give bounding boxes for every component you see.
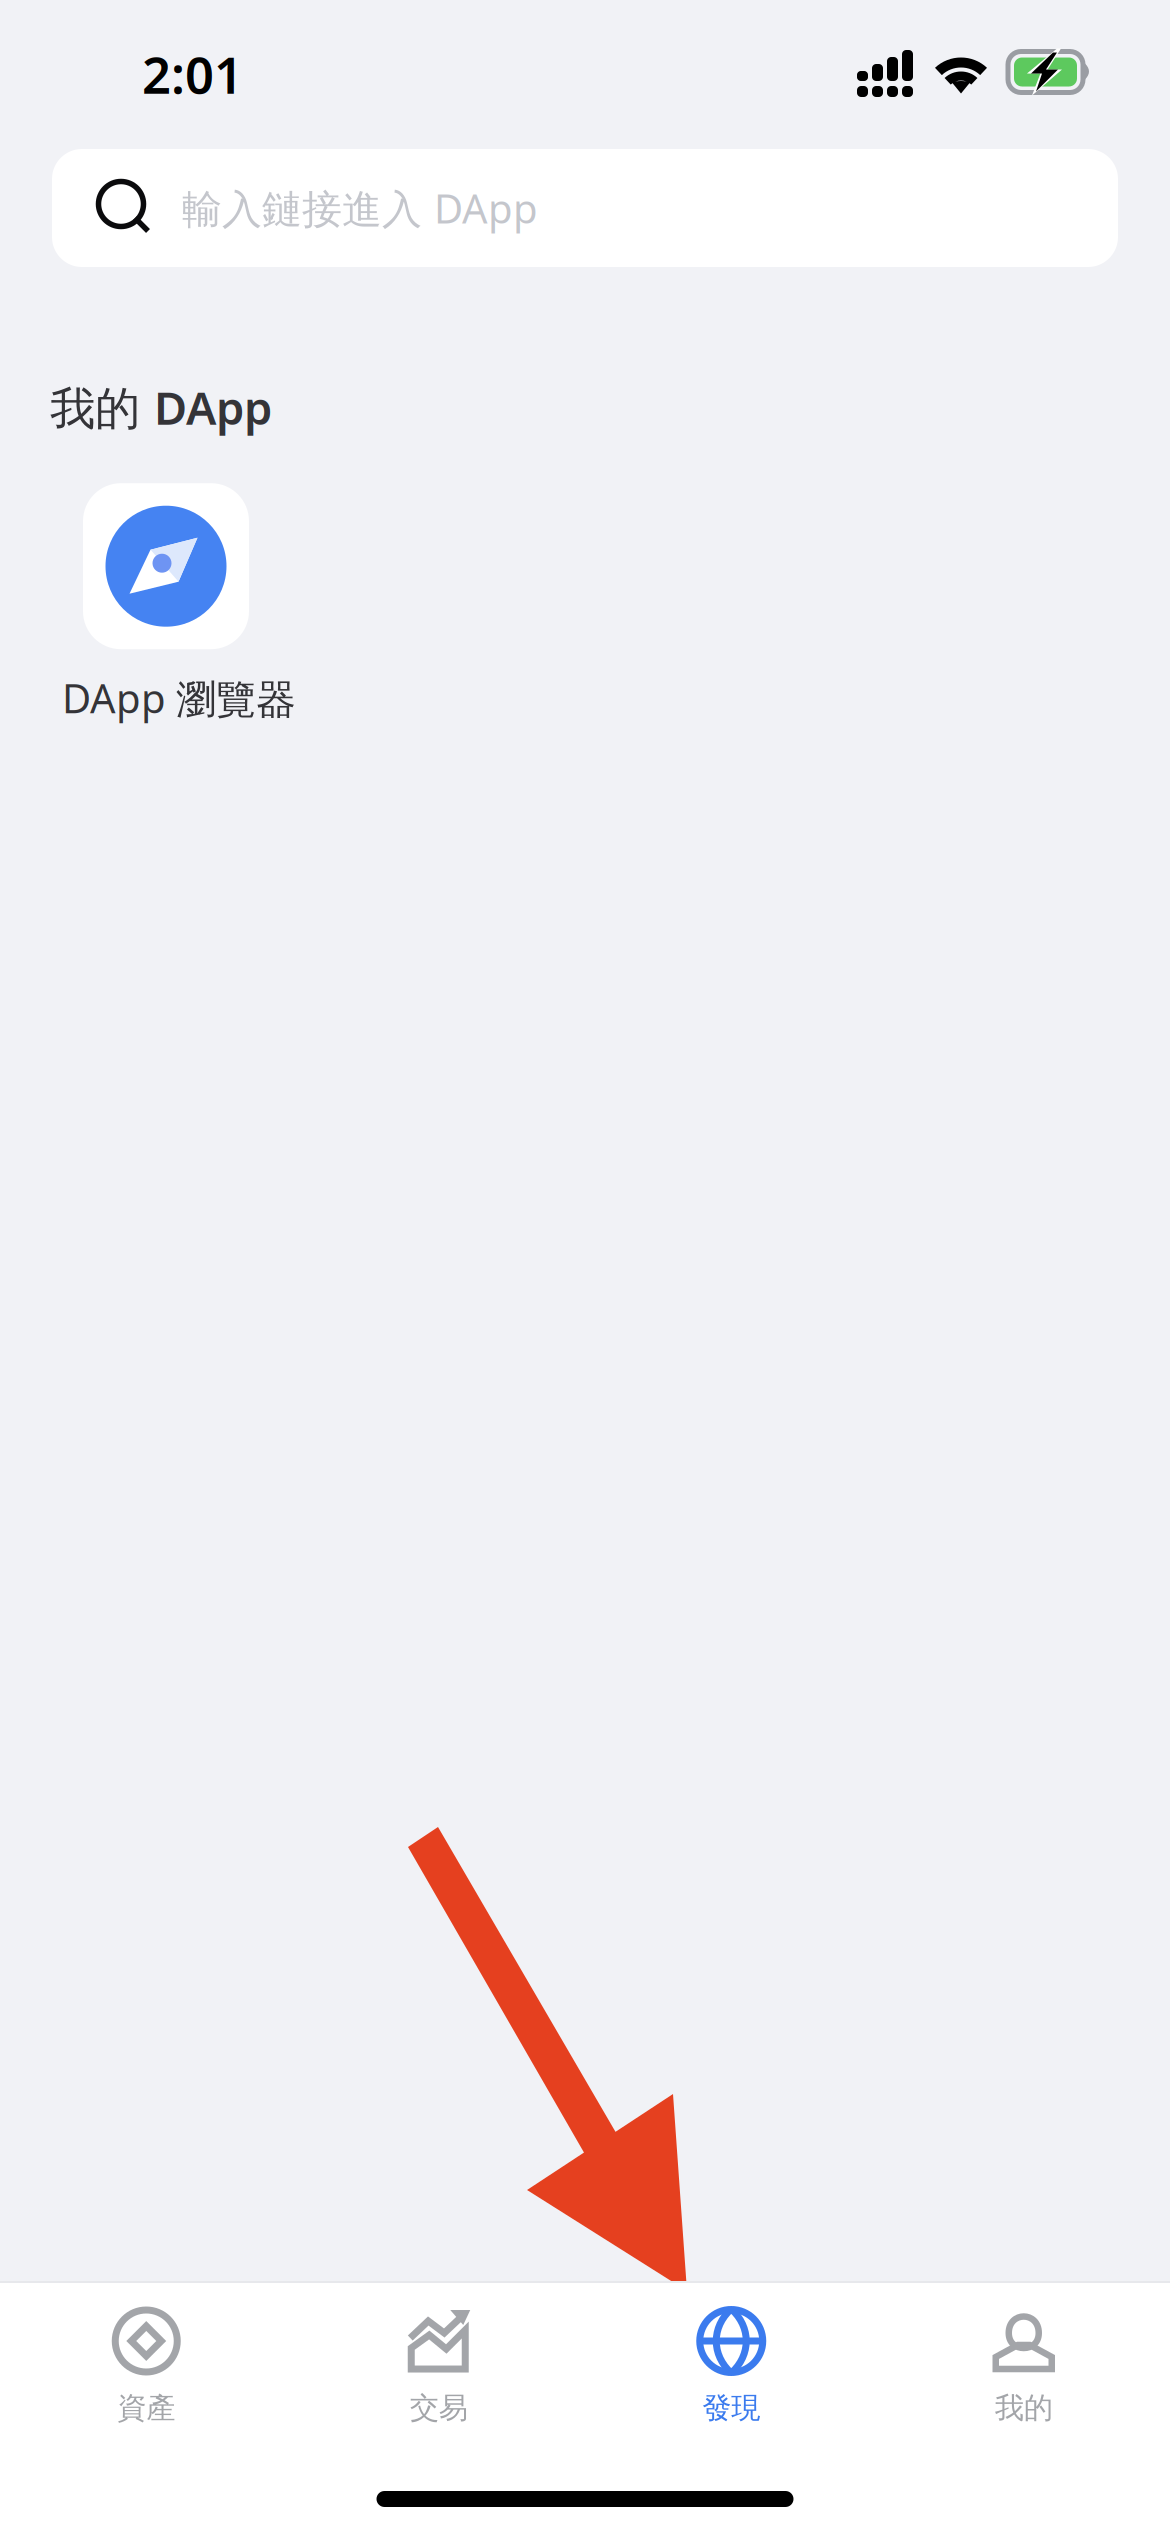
button[interactable]: 資產 bbox=[0, 2283, 292, 2446]
button[interactable]: DApp 瀏覽器 bbox=[62, 483, 296, 724]
staticText: 我的 DApp bbox=[50, 377, 272, 437]
staticText: 資產 bbox=[117, 2390, 175, 2426]
button[interactable]: 我的 bbox=[877, 2283, 1170, 2446]
staticText: 2:01 bbox=[142, 40, 243, 108]
staticText: 發現 bbox=[702, 2390, 760, 2426]
staticText: 我的 bbox=[995, 2390, 1053, 2426]
staticText: 交易 bbox=[410, 2390, 468, 2426]
staticText: DApp 瀏覽器 bbox=[62, 671, 296, 724]
button[interactable]: 發現 bbox=[585, 2283, 877, 2446]
button[interactable]: 輸入鏈接進入 DApp bbox=[52, 149, 1118, 267]
button[interactable]: 交易 bbox=[292, 2283, 585, 2446]
staticText: 輸入鏈接進入 DApp bbox=[182, 181, 538, 234]
